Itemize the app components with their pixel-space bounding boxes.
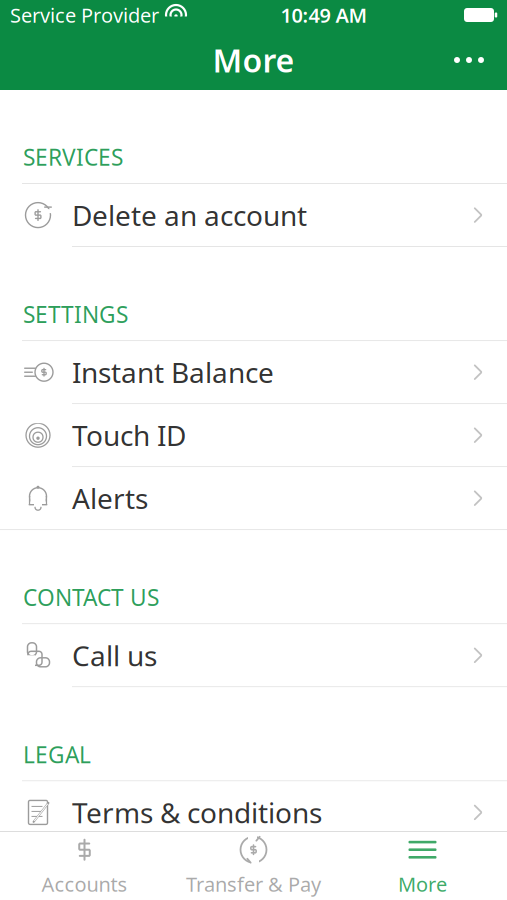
button[interactable]: Call us [0, 624, 507, 686]
button[interactable]: Transfer & Pay [169, 832, 338, 900]
staticText: CONTACT US [23, 582, 159, 612]
button[interactable]: Alerts [0, 467, 507, 529]
staticText: More [398, 871, 447, 897]
staticText: Accounts [41, 871, 127, 897]
staticText: Terms & conditions [72, 794, 322, 831]
staticText: LEGAL [23, 739, 91, 769]
staticText: Delete an account [72, 196, 307, 234]
staticText: 10:49 AM [280, 2, 367, 28]
button[interactable]: Instant Balance [0, 341, 507, 403]
staticText: Touch ID [72, 417, 186, 454]
staticText: SETTINGS [23, 299, 128, 329]
staticText: Instant Balance [72, 354, 274, 391]
button[interactable]: Terms & conditions [0, 781, 507, 843]
button[interactable]: More options [441, 38, 497, 82]
staticText: SERVICES [23, 142, 123, 172]
staticText: Transfer & Pay [186, 871, 321, 897]
staticText: Call us [72, 637, 157, 674]
button[interactable]: Accounts [0, 832, 169, 900]
staticText: More [212, 39, 294, 81]
button[interactable]: Touch ID [0, 404, 507, 466]
staticText: Alerts [72, 480, 148, 517]
button[interactable]: More [338, 832, 507, 900]
staticText: Service Provider [10, 2, 159, 28]
button[interactable]: Delete an account [0, 184, 507, 246]
